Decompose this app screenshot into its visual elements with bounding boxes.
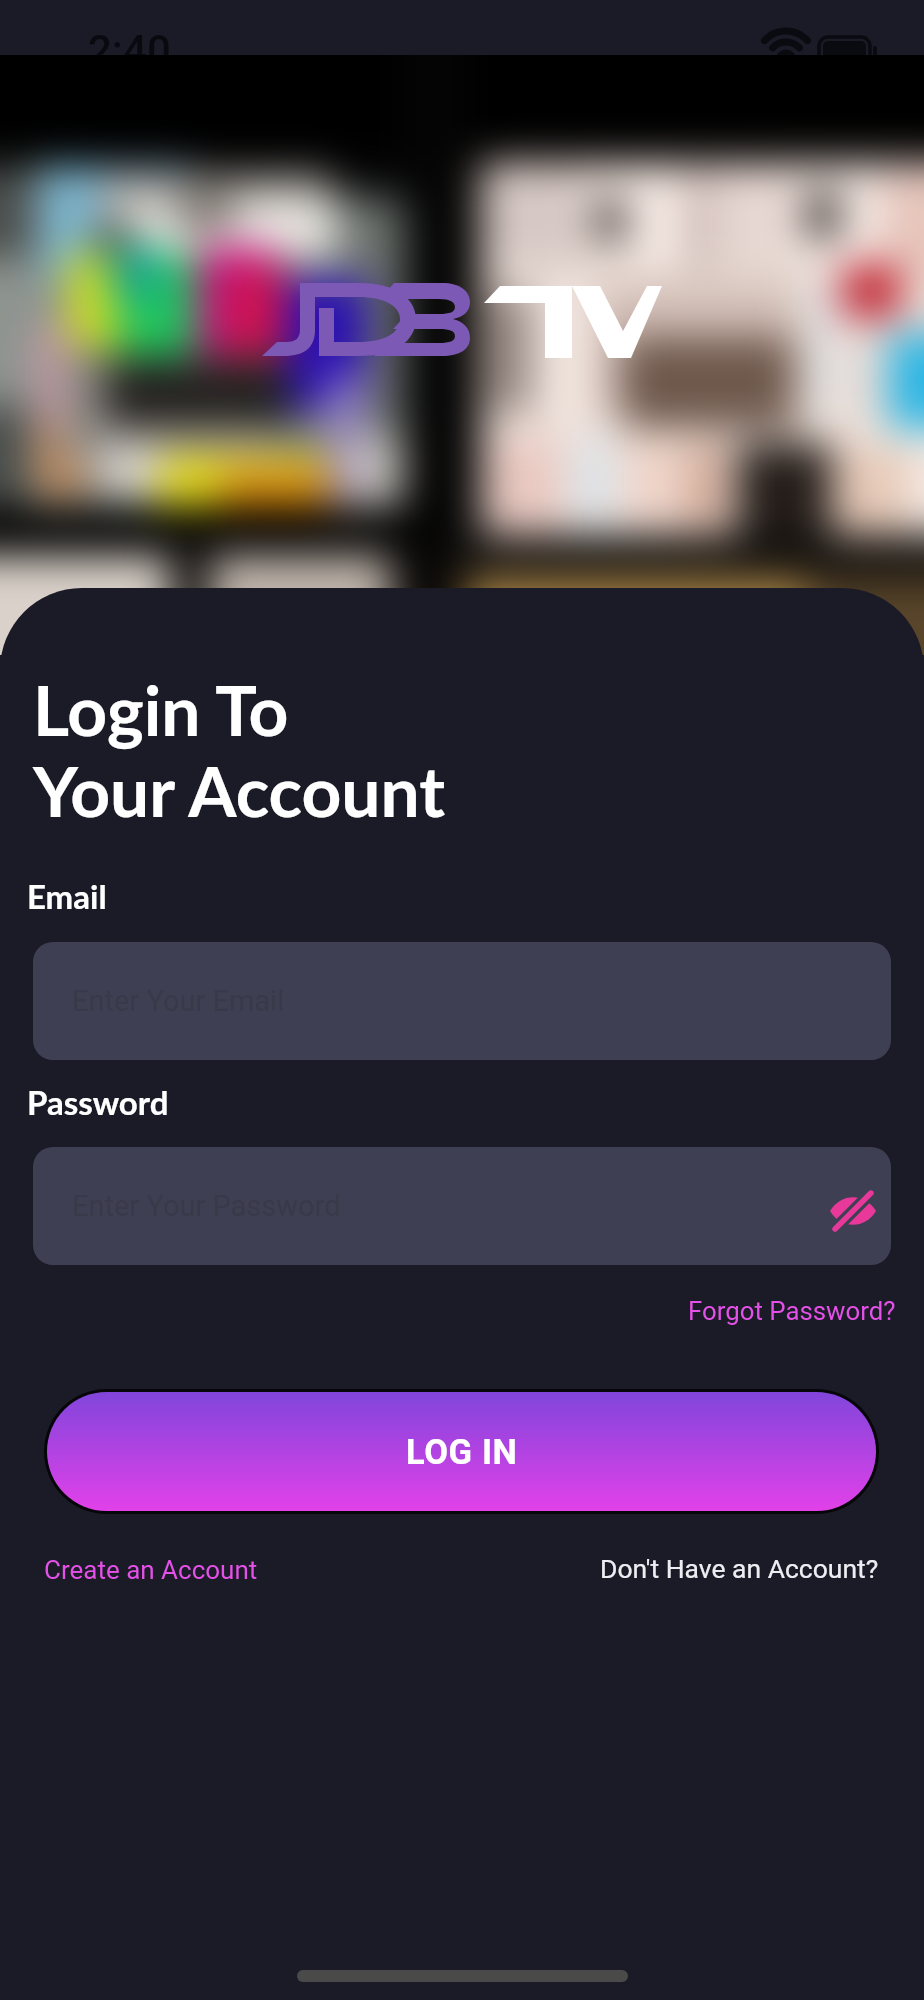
- button[interactable]: Enter Your Password: [33, 1147, 891, 1265]
- staticText: Create an Account: [44, 1555, 258, 1585]
- staticText: Don't Have an Account?: [600, 1553, 879, 1584]
- staticText: 2:40: [88, 26, 171, 75]
- staticText: Enter Your Password: [72, 1189, 341, 1223]
- button[interactable]: Show password: [824, 1182, 882, 1240]
- staticText: Login To Your Account: [33, 667, 446, 832]
- staticText: Forgot Password?: [688, 1296, 896, 1326]
- staticText: Password: [27, 1082, 169, 1122]
- button[interactable]: Don't Have an Account?: [600, 1553, 879, 1584]
- staticText: LOG IN: [406, 1432, 518, 1472]
- button[interactable]: Create an Account: [44, 1555, 258, 1585]
- button[interactable]: Forgot Password?: [688, 1296, 896, 1326]
- staticText: Email: [27, 876, 107, 916]
- button[interactable]: LOG IN: [47, 1392, 876, 1511]
- staticText: Enter Your Email: [72, 984, 285, 1018]
